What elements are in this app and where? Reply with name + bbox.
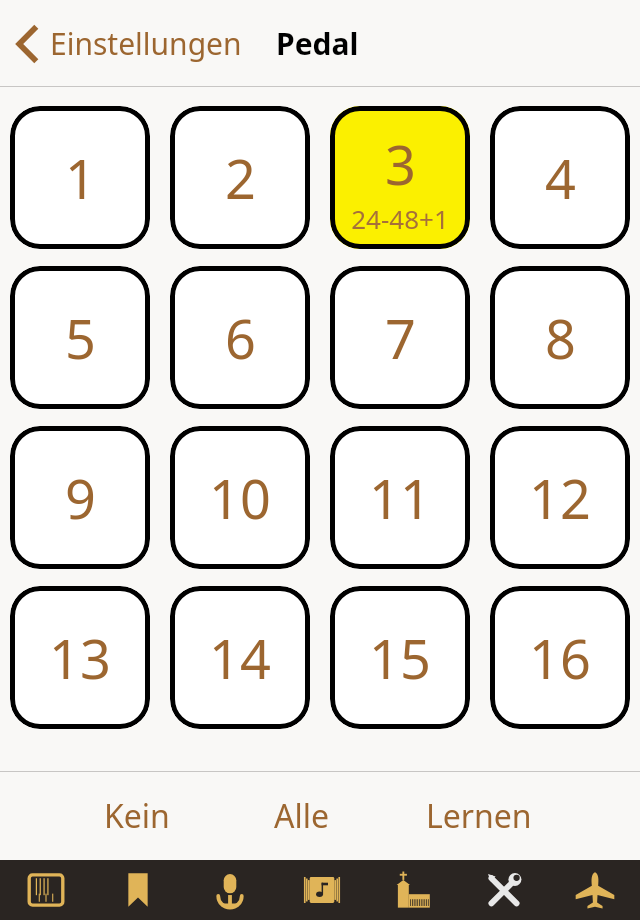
button[interactable]: 7 [330,266,470,409]
button[interactable]: 14 [170,586,310,729]
staticText: 16 [529,621,591,695]
button[interactable]: 3 [330,106,470,249]
button[interactable]: 12 [490,426,630,569]
button[interactable]: 9 [10,426,150,569]
button[interactable]: Settings [458,860,549,920]
staticText: 14 [209,621,271,695]
staticText: 13 [49,621,111,695]
button[interactable]: Alle [240,782,364,850]
button[interactable]: 8 [490,266,630,409]
staticText: Pedal [276,23,359,64]
staticText: 2 [225,141,256,215]
staticText: 7 [385,301,416,375]
staticText: 8 [545,301,576,375]
button[interactable]: 4 [490,106,630,249]
button[interactable]: Lernen [392,782,566,850]
staticText: Einstellungen [50,23,242,64]
staticText: 12 [529,461,591,535]
button[interactable]: 13 [10,586,150,729]
button[interactable]: 5 [10,266,150,409]
button[interactable]: 10 [170,426,310,569]
button[interactable]: Bookmarks [92,860,184,920]
staticText: 1 [65,141,96,215]
button[interactable]: 11 [330,426,470,569]
button[interactable]: Airplane mode [549,860,640,920]
staticText: 9 [65,461,96,535]
staticText: 4 [545,141,576,215]
button[interactable]: 2 [170,106,310,249]
button[interactable]: 16 [490,586,630,729]
staticText: 10 [209,461,271,535]
button[interactable]: 1 [10,106,150,249]
staticText: 15 [369,621,431,695]
staticText: 11 [369,461,431,535]
staticText: 24-48+1 [351,201,449,236]
button[interactable]: Church [367,860,458,920]
staticText: 5 [65,301,96,375]
button[interactable]: Piano [0,860,92,920]
button[interactable]: Microphone [184,860,276,920]
button[interactable]: Songbook [276,860,367,920]
button[interactable]: 15 [330,586,470,729]
button[interactable]: Kein [70,782,204,850]
button[interactable]: 6 [170,266,310,409]
staticText: 6 [225,301,256,375]
button[interactable]: Einstellungen [14,23,250,64]
staticText: 3 [385,127,416,201]
